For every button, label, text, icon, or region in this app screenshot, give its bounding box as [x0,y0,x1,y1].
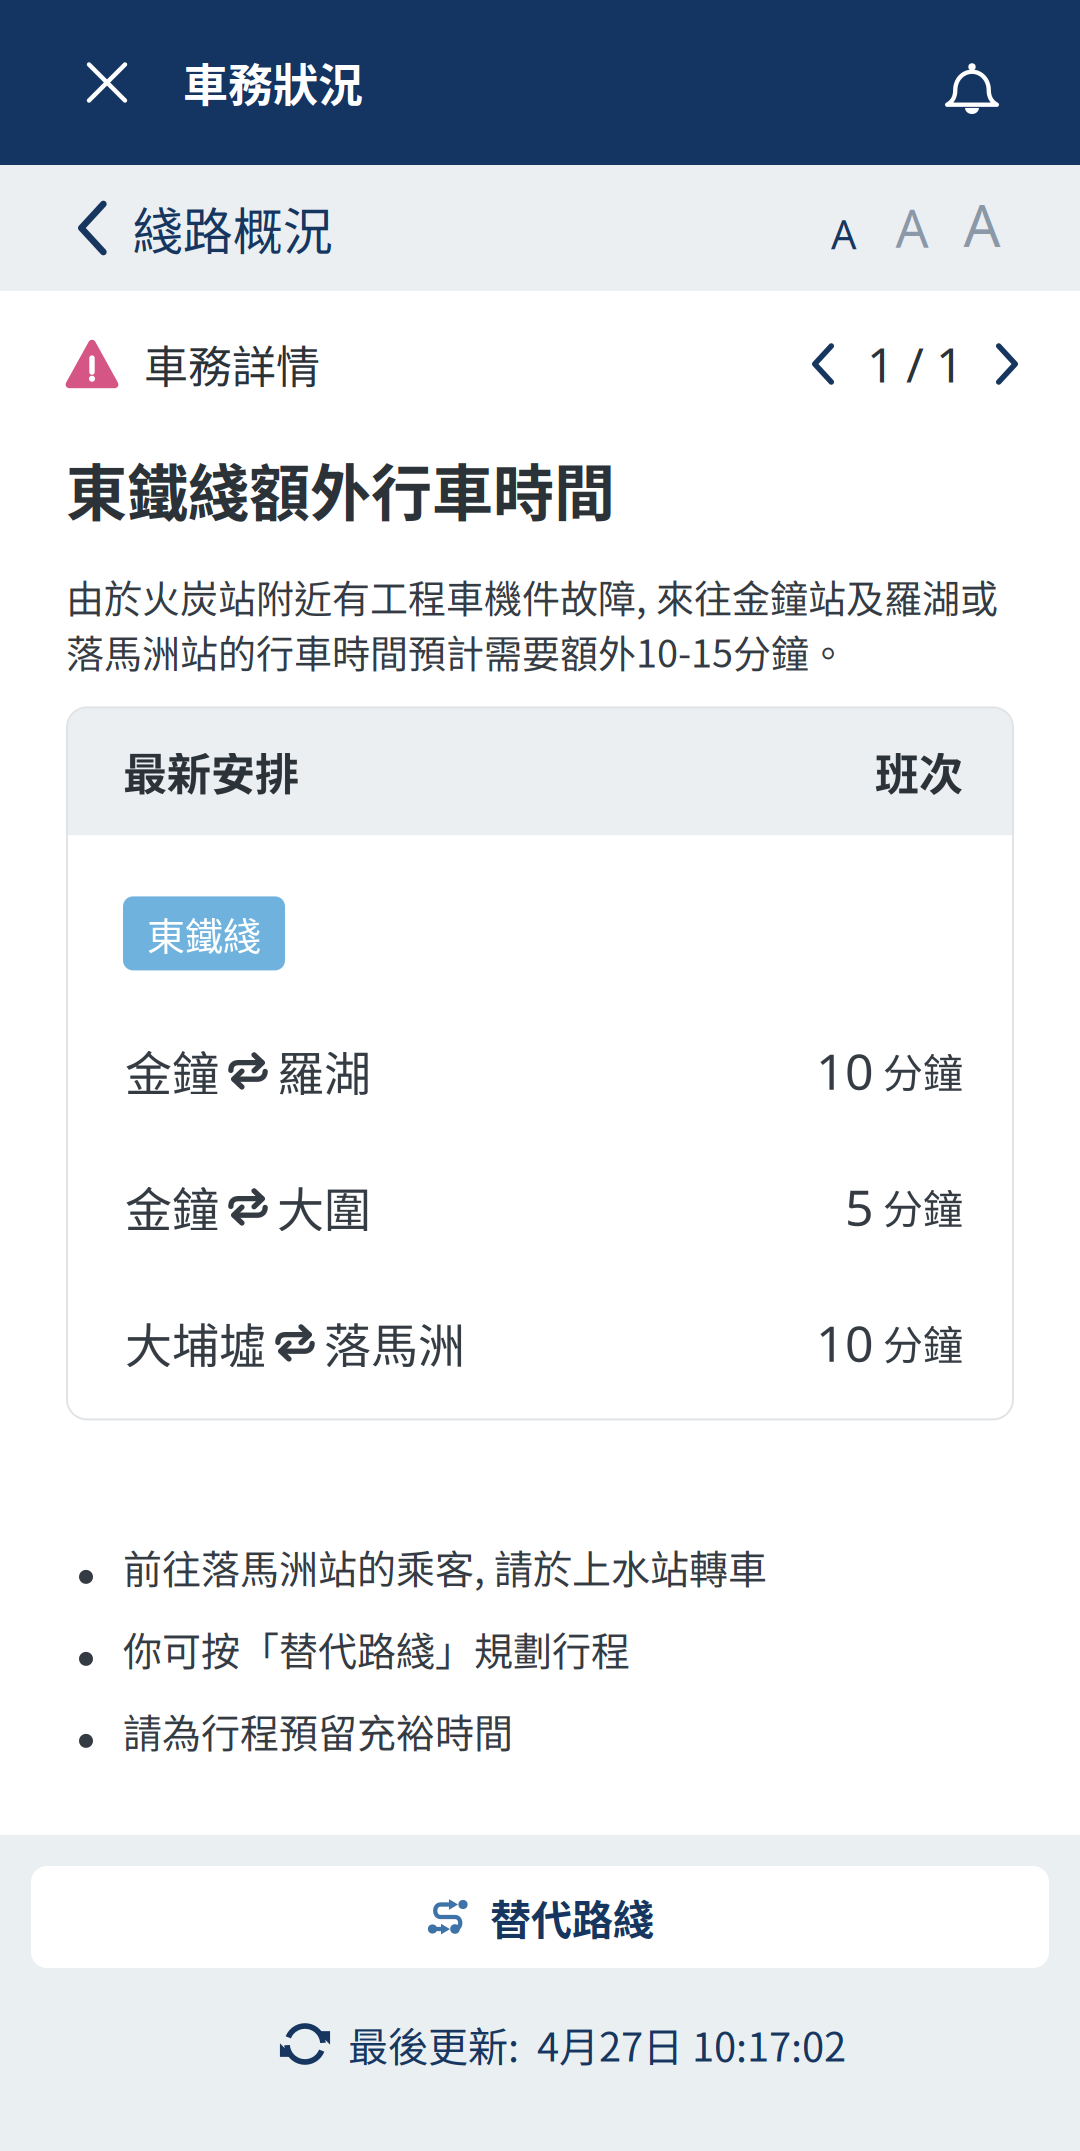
staticText: 綫路概況 [133,192,333,264]
staticText: 分鐘 [874,1177,963,1235]
staticText: 落馬洲 [324,1308,465,1376]
button[interactable]: Previous incident [794,331,852,397]
staticText: 金鐘 [125,1172,219,1240]
staticText: 1 / 1 [867,331,963,397]
button[interactable]: Large text size [946,192,1018,264]
button[interactable]: Close [54,23,160,141]
staticText: 10 [816,1308,874,1376]
staticText: 10 [816,1036,874,1104]
staticText: 替代路綫 [490,1887,654,1947]
staticText: 車務詳情 [144,332,320,396]
staticText: 羅湖 [277,1036,371,1104]
button[interactable]: Medium text size [878,193,946,263]
staticText: 大埔墟 [125,1308,266,1376]
staticText: 車務狀況 [183,50,363,115]
button[interactable]: Notifications [904,23,1040,141]
staticText: 分鐘 [874,1041,963,1099]
button[interactable]: 綫路概況 [0,165,333,291]
staticText: 請為行程預留充裕時間 [123,1702,513,1759]
staticText: 大圍 [277,1172,371,1240]
button[interactable]: Next incident [978,331,1036,397]
staticText: 5 [845,1172,874,1240]
staticText: 最新安排 [123,739,299,803]
staticText: 由於火炭站附近有工程車機件故障, 來往金鐘站及羅湖或落馬洲站的行車時間預計需要額… [66,568,998,678]
staticText: 前往落馬洲站的乘客, 請於上水站轉車 [123,1538,767,1595]
staticText: 你可按「替代路綫」規劃行程 [123,1620,630,1677]
staticText: 金鐘 [125,1036,219,1104]
staticText: 東鐵綫額外行車時間 [66,445,615,533]
button[interactable]: 替代路綫 [0,1835,1080,1968]
staticText: 東鐵綫 [147,906,261,961]
staticText: A [895,192,928,263]
button[interactable]: 最後更新: 4月27日 10:17:02 [234,1968,846,2094]
button[interactable]: Small text size [810,195,878,261]
staticText: A [831,206,857,261]
staticText: 最後更新: 4月27日 10:17:02 [348,2015,846,2073]
staticText: A [963,185,1000,264]
staticText: 班次 [875,739,963,803]
staticText: 分鐘 [874,1313,963,1371]
